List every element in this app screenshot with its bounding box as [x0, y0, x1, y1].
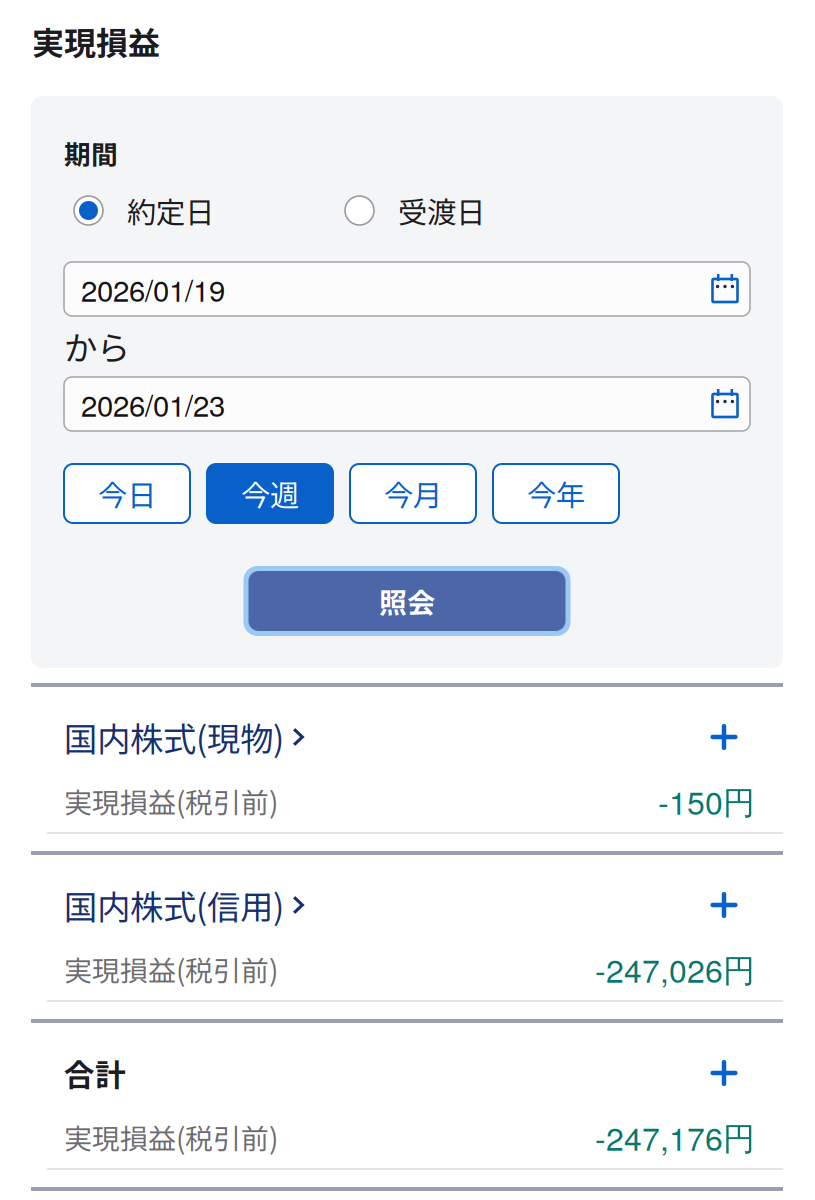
- staticText: -247,176円: [595, 1114, 755, 1160]
- staticText: -150円: [658, 778, 755, 824]
- staticText: 約定日: [127, 189, 214, 232]
- staticText: 2026/01/23: [81, 383, 225, 425]
- staticText: 期間: [64, 134, 118, 172]
- button[interactable]: 2026/01/19: [64, 262, 750, 316]
- staticText: 今週: [241, 472, 299, 515]
- staticText: 今月: [384, 472, 442, 515]
- button[interactable]: 国内株式(信用): [64, 884, 311, 926]
- button[interactable]: 2026/01/23: [64, 377, 750, 431]
- staticText: 2026/01/19: [81, 268, 225, 310]
- staticText: 今日: [98, 472, 156, 515]
- button[interactable]: 今日: [64, 464, 190, 523]
- staticText: 今年: [527, 472, 585, 515]
- staticText: から: [64, 322, 130, 370]
- button[interactable]: 今週: [207, 464, 333, 523]
- button[interactable]: 内訳を開く: [710, 1059, 755, 1087]
- button[interactable]: 今月: [350, 464, 476, 523]
- staticText: 実現損益(税引前): [64, 781, 278, 821]
- staticText: 実現損益(税引前): [64, 1117, 278, 1157]
- button[interactable]: 内訳を開く: [710, 723, 755, 751]
- button[interactable]: 内訳を開く: [710, 891, 755, 919]
- button[interactable]: 照会: [243, 566, 570, 636]
- staticText: 実現損益(税引前): [64, 949, 278, 989]
- staticText: 国内株式(信用): [64, 881, 284, 929]
- staticText: -247,026円: [595, 946, 755, 992]
- staticText: 実現損益: [32, 18, 160, 64]
- button[interactable]: 国内株式(現物): [64, 716, 311, 758]
- staticText: 合計: [64, 1051, 126, 1095]
- button[interactable]: 受渡日: [345, 189, 485, 232]
- staticText: 国内株式(現物): [64, 713, 284, 761]
- button[interactable]: 今年: [493, 464, 619, 523]
- button[interactable]: 約定日: [74, 189, 214, 232]
- staticText: 受渡日: [398, 189, 485, 232]
- button[interactable]: 合計: [64, 1052, 132, 1094]
- staticText: 照会: [379, 581, 435, 621]
